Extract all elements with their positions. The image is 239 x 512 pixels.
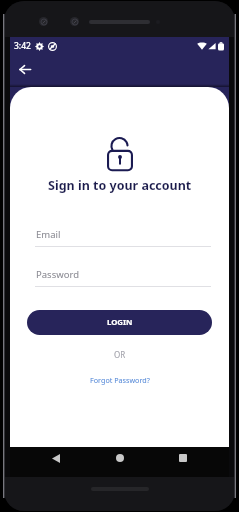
staticText: LOGIN bbox=[107, 317, 133, 328]
button[interactable]: Home bbox=[111, 449, 129, 467]
staticText: Forgot Password? bbox=[90, 375, 150, 385]
staticText: Password bbox=[36, 268, 79, 281]
staticText: Sign in to your account bbox=[48, 177, 192, 194]
button[interactable]: Forgot Password? bbox=[88, 374, 152, 386]
button[interactable]: LOGIN bbox=[27, 310, 212, 335]
button[interactable]: Recent apps bbox=[174, 449, 192, 467]
staticText: Email bbox=[36, 228, 61, 241]
button[interactable]: Email bbox=[35, 228, 211, 247]
staticText: 3:42 bbox=[14, 40, 31, 52]
staticText: OR bbox=[114, 349, 126, 360]
button[interactable]: Password bbox=[35, 268, 211, 287]
button[interactable]: Back bbox=[47, 449, 65, 467]
button[interactable]: Back bbox=[15, 59, 35, 79]
